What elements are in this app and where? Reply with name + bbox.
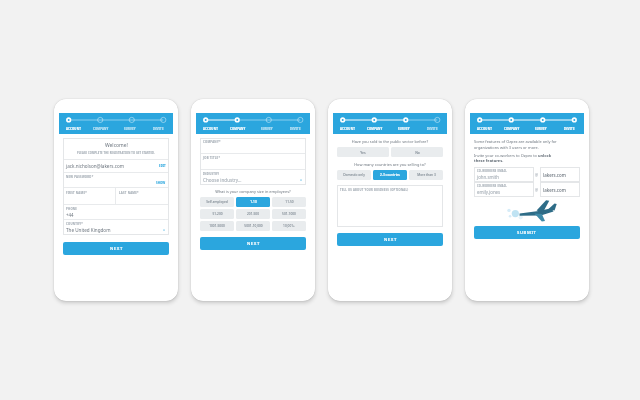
staticText: More than 3 <box>417 173 436 177</box>
staticText: NEXT <box>110 246 123 252</box>
staticText: ACCOUNT <box>340 127 355 131</box>
staticText: 51-200 <box>212 212 223 216</box>
button[interactable]: 501-1000 <box>272 209 306 219</box>
staticText: SURVEY <box>535 127 547 131</box>
button[interactable]: TELL US ABOUT YOUR BUSINESS (OPTIONAL) <box>340 188 440 224</box>
staticText: ACCOUNT <box>477 127 492 131</box>
button[interactable]: INDUSTRY <box>203 172 303 183</box>
button[interactable]: Domestic only <box>337 170 371 180</box>
staticText: Choose industry... <box>203 177 299 183</box>
staticText: Self-employed <box>206 200 228 204</box>
button[interactable]: 1-10 <box>236 197 270 207</box>
button[interactable]: NEXT <box>200 237 306 250</box>
staticText: INDUSTRY <box>203 172 220 176</box>
staticText: these features. <box>474 158 504 163</box>
staticText: Invite your co-workers to Ozpex to <box>474 153 538 158</box>
staticText: INVITE <box>427 127 438 131</box>
staticText: Have you sold to the public sector befor… <box>337 139 443 144</box>
staticText: COMPANY <box>367 127 383 131</box>
button[interactable]: COUNTRY* <box>66 222 166 233</box>
staticText: EDIT <box>159 164 166 168</box>
staticText: TELL US ABOUT YOUR BUSINESS (OPTIONAL) <box>340 188 409 192</box>
button[interactable]: NEXT <box>63 242 169 255</box>
staticText: Yes <box>360 150 366 155</box>
button[interactable]: CO-WORKERS EMAIL <box>477 184 531 195</box>
staticText: NEXT <box>384 237 397 243</box>
staticText: NEXT <box>247 241 260 247</box>
staticText: john.smith <box>477 174 500 180</box>
staticText: ACCOUNT <box>66 127 81 131</box>
staticText: emily.jones <box>477 189 501 195</box>
staticText: NEW PASSWORD* <box>66 175 94 179</box>
staticText: 501-1000 <box>282 212 296 216</box>
button[interactable]: Self-employed <box>200 197 234 207</box>
staticText: INVITE <box>564 127 575 131</box>
staticText: 5001-10,000 <box>244 224 263 228</box>
button[interactable]: No <box>391 147 443 157</box>
button[interactable]: 1001-5000 <box>200 221 234 231</box>
staticText: +44 <box>66 212 74 217</box>
button[interactable]: NEXT <box>337 233 443 246</box>
button[interactable]: SUBMIT <box>474 226 580 239</box>
staticText: lakers.com <box>543 187 566 193</box>
button[interactable]: 51-200 <box>200 209 234 219</box>
staticText: LAST NAME* <box>119 191 139 195</box>
staticText: 11-50 <box>285 200 294 204</box>
staticText: 10,001+ <box>283 224 295 228</box>
button[interactable]: 2-3 countries <box>373 170 407 180</box>
staticText: lakers.com <box>543 172 566 178</box>
button[interactable]: 10,001+ <box>272 221 306 231</box>
staticText: @ <box>535 187 539 192</box>
staticText: @ <box>535 172 539 177</box>
staticText: How many countries are you selling to? <box>337 162 443 167</box>
staticText: No <box>415 150 420 155</box>
staticText: INVITE <box>153 127 164 131</box>
staticText: COUNTRY* <box>66 222 84 226</box>
staticText: unlock <box>538 153 552 158</box>
button[interactable]: 201-500 <box>236 209 270 219</box>
staticText: CO-WORKERS EMAIL <box>477 184 507 188</box>
button[interactable]: More than 3 <box>409 170 443 180</box>
staticText: 201-500 <box>247 212 259 216</box>
staticText: SURVEY <box>261 127 273 131</box>
staticText: SUBMIT <box>517 230 537 236</box>
staticText: COMPANY* <box>203 140 221 144</box>
staticText: 2-3 countries <box>380 173 400 177</box>
staticText: What is your company size in employees? <box>200 189 306 194</box>
staticText: COMPANY <box>230 127 246 131</box>
staticText: COMPANY <box>504 127 520 131</box>
button[interactable]: CO-WORKERS EMAIL <box>477 169 531 180</box>
button[interactable]: Yes <box>337 147 389 157</box>
staticText: SHOW <box>156 181 166 185</box>
button[interactable]: EDIT <box>159 164 166 168</box>
staticText: 1-10 <box>250 200 257 204</box>
staticText: SURVEY <box>124 127 136 131</box>
staticText: CO-WORKERS EMAIL <box>477 169 507 173</box>
staticText: The United Kingdom <box>66 227 162 233</box>
staticText: PHONE <box>66 207 78 211</box>
staticText: INVITE <box>290 127 301 131</box>
staticText: Welcome! <box>105 142 128 149</box>
button[interactable]: 5001-10,000 <box>236 221 270 231</box>
staticText: PLEASE COMPLETE THE REGISTRATION TO GET … <box>77 151 155 155</box>
staticText: Domestic only <box>343 173 365 177</box>
staticText: FIRST NAME* <box>66 191 88 195</box>
staticText: COMPANY <box>93 127 109 131</box>
staticText: JOB TITLE* <box>203 156 221 160</box>
staticText: ACCOUNT <box>203 127 218 131</box>
button[interactable]: SHOW <box>156 181 166 185</box>
staticText: 1001-5000 <box>209 224 225 228</box>
staticText: SURVEY <box>398 127 410 131</box>
button[interactable]: 11-50 <box>272 197 306 207</box>
staticText: jack.nicholson@lakers.com <box>66 163 159 169</box>
staticText: Some features of Ozpex are available onl… <box>474 139 580 150</box>
